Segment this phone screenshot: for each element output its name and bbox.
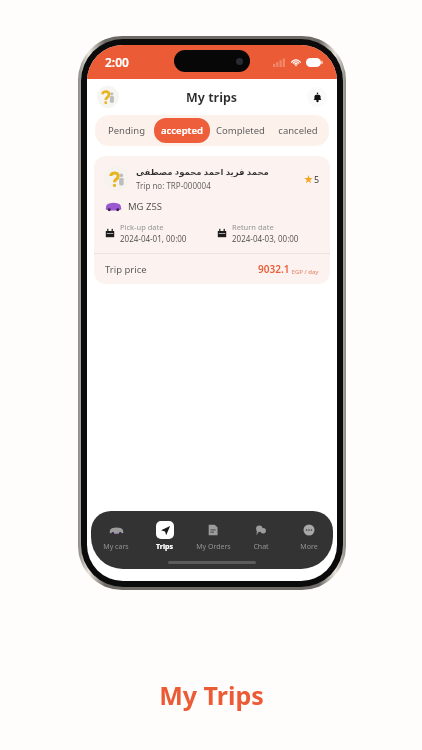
staticText: More — [300, 542, 318, 552]
staticText: 9032.1 — [258, 262, 290, 276]
staticText: MG Z5S — [128, 200, 163, 213]
button[interactable]: Notifications — [307, 87, 327, 107]
staticText: 2024-04-01, 00:00 — [120, 233, 187, 244]
staticText: canceled — [278, 124, 318, 137]
staticText: My trips — [186, 89, 238, 106]
staticText: 2024-04-03, 00:00 — [232, 233, 299, 244]
button[interactable]: محمد فريد احمد محمود مصطفى — [94, 156, 330, 284]
staticText: accepted — [161, 124, 203, 137]
staticText: Pick-up date — [120, 222, 164, 232]
staticText: Completed — [216, 124, 265, 137]
button[interactable]: My Orders — [189, 519, 237, 554]
button[interactable]: More — [285, 519, 333, 554]
button[interactable]: accepted — [154, 118, 210, 143]
staticText: Trip price — [105, 263, 147, 276]
staticText: My cars — [103, 542, 129, 552]
staticText: Trips — [156, 542, 173, 552]
staticText: My Trips — [159, 678, 264, 712]
button[interactable]: My cars — [91, 519, 140, 554]
staticText: 5 — [314, 173, 320, 185]
staticText: EGP / day — [290, 268, 319, 276]
staticText: Return date — [232, 222, 274, 232]
button[interactable]: Profile — [97, 86, 119, 108]
button[interactable]: canceled — [270, 118, 326, 143]
staticText: Pending — [108, 124, 145, 137]
button[interactable]: Pending — [98, 118, 154, 143]
staticText: My Orders — [196, 542, 231, 552]
staticText: Chat — [253, 542, 269, 552]
staticText: 2:00 — [105, 54, 129, 70]
button[interactable]: Completed — [210, 118, 270, 143]
staticText: Trip no: TRP-000004 — [136, 180, 211, 191]
button[interactable]: Chat — [237, 519, 285, 554]
button[interactable]: Trips — [140, 519, 189, 554]
staticText: محمد فريد احمد محمود مصطفى — [136, 166, 269, 178]
